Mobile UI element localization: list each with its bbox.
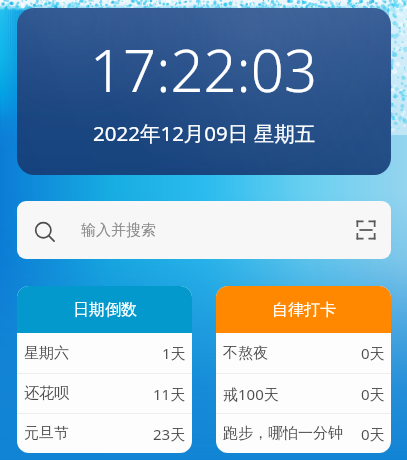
button[interactable]: 跑步，哪怕一分钟 [216, 414, 391, 453]
staticText: 23天 [153, 424, 186, 444]
button[interactable]: 星期六 [17, 333, 192, 373]
staticText: 0天 [361, 384, 385, 404]
staticText: 还花呗 [24, 384, 69, 403]
staticText: 不熬夜 [223, 344, 268, 363]
button[interactable]: 输入并搜索 [17, 201, 391, 259]
button[interactable]: 不熬夜 [216, 333, 391, 373]
staticText: 跑步，哪怕一分钟 [223, 424, 343, 443]
staticText: 戒100天 [223, 384, 279, 404]
staticText: 自律打卡 [272, 300, 336, 320]
button[interactable]: 元旦节 [17, 414, 192, 453]
button[interactable]: Scan QR code [355, 219, 377, 241]
button[interactable]: 17:22:03 [17, 8, 391, 175]
button[interactable]: 还花呗 [17, 374, 192, 413]
staticText: 17:22:03 [90, 30, 318, 109]
staticText: 星期六 [24, 344, 69, 363]
staticText: 日期倒数 [73, 300, 137, 320]
staticText: 元旦节 [24, 424, 69, 443]
button[interactable]: 日期倒数 [17, 286, 192, 333]
staticText: 11天 [153, 384, 186, 404]
staticText: 0天 [361, 424, 385, 444]
button[interactable]: 自律打卡 [216, 286, 391, 333]
button[interactable]: 戒100天 [216, 374, 391, 413]
staticText: 0天 [361, 343, 385, 363]
staticText: 输入并搜索 [81, 221, 156, 240]
staticText: 2022年12月09日 星期五 [93, 119, 316, 147]
staticText: 1天 [162, 343, 186, 363]
